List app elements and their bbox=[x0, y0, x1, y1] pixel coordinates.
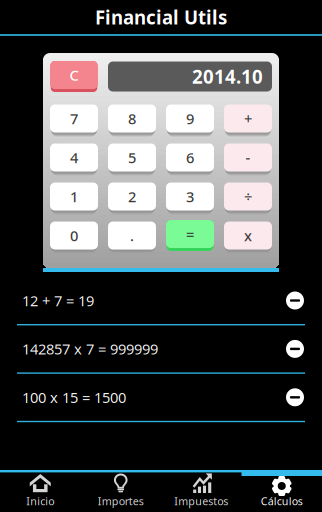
staticText: 4 bbox=[70, 148, 78, 167]
button[interactable]: 7 bbox=[50, 103, 98, 134]
staticText: 7 bbox=[70, 109, 78, 128]
staticText: Impuestos bbox=[174, 494, 228, 508]
button[interactable]: Delete bbox=[278, 283, 312, 317]
staticText: 12 + 7 = 19 bbox=[22, 291, 94, 310]
staticText: 0 bbox=[70, 226, 78, 245]
staticText: Financial Utils bbox=[95, 5, 227, 30]
staticText: 8 bbox=[128, 109, 136, 128]
button[interactable]: 9 bbox=[166, 103, 214, 134]
button[interactable]: . bbox=[108, 220, 156, 251]
button[interactable]: Importes bbox=[80, 470, 161, 512]
button[interactable]: 3 bbox=[166, 181, 214, 212]
staticText: 142857 x 7 = 999999 bbox=[22, 339, 158, 359]
button[interactable]: C bbox=[50, 61, 98, 92]
button[interactable]: 142857 x 7 = 999999 bbox=[0, 325, 322, 372]
staticText: Cálculos bbox=[261, 494, 303, 508]
staticText: 1 bbox=[70, 187, 78, 206]
staticText: ÷ bbox=[244, 187, 252, 206]
button[interactable]: 12 + 7 = 19 bbox=[0, 277, 322, 324]
staticText: Importes bbox=[98, 494, 144, 508]
button[interactable]: Delete bbox=[278, 332, 312, 366]
button[interactable]: = bbox=[166, 220, 214, 251]
button[interactable]: 0 bbox=[50, 220, 98, 251]
staticText: 6 bbox=[186, 148, 194, 167]
staticText: - bbox=[245, 148, 250, 167]
staticText: 5 bbox=[128, 148, 136, 167]
button[interactable]: 5 bbox=[108, 142, 156, 173]
button[interactable]: Inicio bbox=[0, 470, 80, 512]
button[interactable]: - bbox=[224, 142, 272, 173]
button[interactable]: x bbox=[224, 220, 272, 251]
button[interactable]: Impuestos bbox=[161, 470, 241, 512]
staticText: x bbox=[244, 226, 252, 245]
staticText: 2 bbox=[128, 187, 136, 206]
staticText: 2014.10 bbox=[192, 64, 263, 89]
staticText: C bbox=[69, 65, 78, 85]
staticText: = bbox=[186, 224, 194, 244]
button[interactable]: 6 bbox=[166, 142, 214, 173]
button[interactable]: ÷ bbox=[224, 181, 272, 212]
staticText: Inicio bbox=[26, 494, 54, 508]
button[interactable]: + bbox=[224, 103, 272, 134]
staticText: 100 x 15 = 1500 bbox=[22, 388, 126, 407]
button[interactable]: Delete bbox=[278, 380, 312, 414]
button[interactable]: 8 bbox=[108, 103, 156, 134]
staticText: . bbox=[130, 226, 134, 245]
button[interactable]: 100 x 15 = 1500 bbox=[0, 374, 322, 421]
staticText: 9 bbox=[186, 109, 194, 128]
staticText: 3 bbox=[186, 187, 194, 206]
button[interactable]: Cálculos bbox=[241, 470, 322, 512]
button[interactable]: 1 bbox=[50, 181, 98, 212]
staticText: + bbox=[244, 109, 252, 128]
button[interactable]: 2 bbox=[108, 181, 156, 212]
button[interactable]: 4 bbox=[50, 142, 98, 173]
